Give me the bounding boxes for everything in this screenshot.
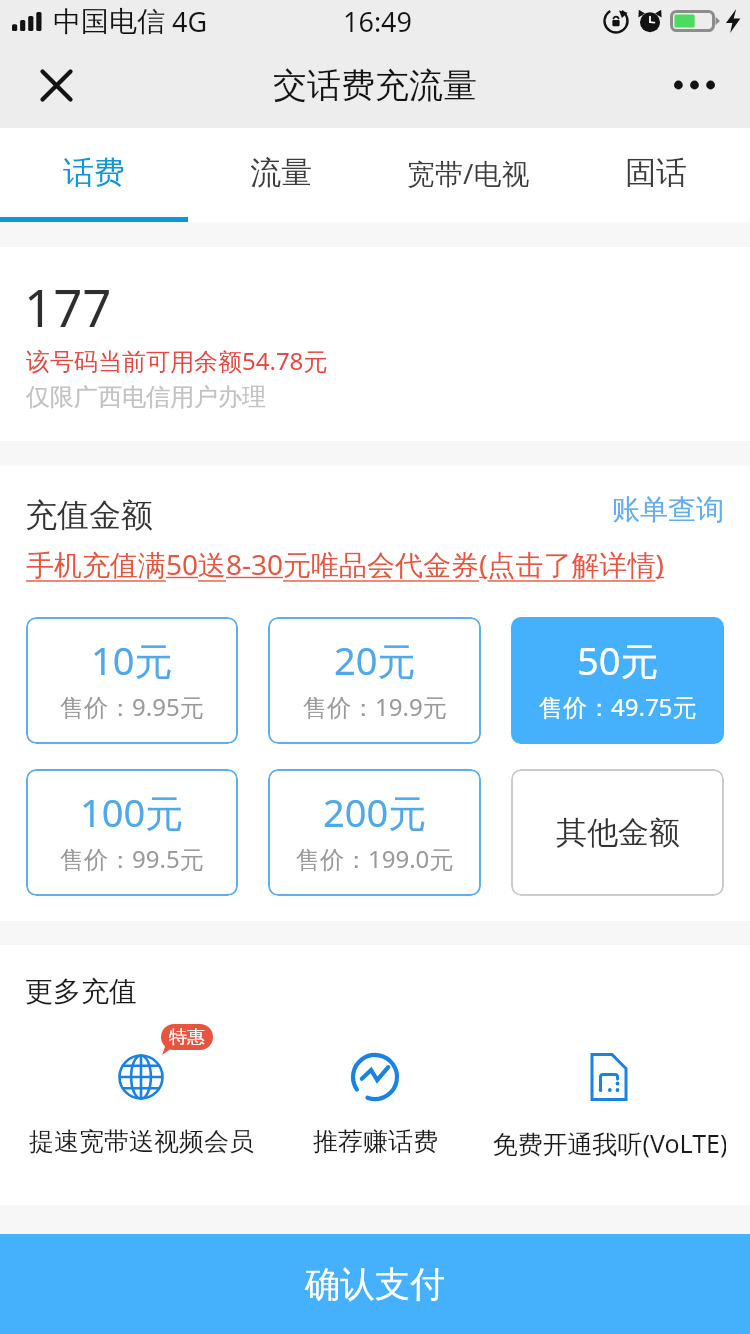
staticText: 100元 bbox=[80, 786, 184, 838]
staticText: 200元 bbox=[323, 786, 427, 838]
button[interactable]: 10元 bbox=[26, 617, 238, 744]
staticText: 10元 bbox=[91, 634, 173, 686]
staticText: 账单查询 bbox=[612, 492, 724, 527]
button[interactable]: More options bbox=[656, 57, 732, 113]
button[interactable]: 流量 bbox=[187, 128, 374, 217]
staticText: 特惠 bbox=[169, 1026, 205, 1049]
button[interactable]: 话费 bbox=[0, 128, 187, 217]
button[interactable]: 100元 bbox=[26, 769, 238, 896]
staticText: 手机充值满50送8-30元唯品会代金券(点击了解详情) bbox=[26, 545, 664, 583]
staticText: 流量 bbox=[250, 153, 312, 192]
staticText: 交话费充流量 bbox=[273, 64, 477, 107]
button[interactable]: 其他金额 bbox=[511, 769, 724, 896]
button[interactable]: 确认支付 bbox=[0, 1234, 750, 1334]
staticText: 固话 bbox=[625, 153, 687, 192]
staticText: 售价：99.5元 bbox=[60, 842, 204, 875]
staticText: 提速宽带送视频会员 bbox=[29, 1126, 254, 1157]
button[interactable]: 宽带/电视 bbox=[374, 128, 562, 217]
staticText: 话费 bbox=[63, 153, 125, 192]
button[interactable]: 推荐赚话费 bbox=[258, 1048, 492, 1157]
button[interactable]: 200元 bbox=[268, 769, 481, 896]
staticText: 16:49 bbox=[343, 3, 413, 40]
staticText: 售价：49.75元 bbox=[539, 690, 697, 723]
staticText: 宽带/电视 bbox=[407, 154, 530, 192]
button[interactable]: 账单查询 bbox=[612, 492, 724, 527]
staticText: 中国电信 bbox=[53, 4, 165, 39]
staticText: 确认支付 bbox=[305, 1262, 445, 1306]
staticText: 售价：199.0元 bbox=[296, 842, 454, 875]
button[interactable]: 免费开通我听(VoLTE) bbox=[492, 1048, 726, 1160]
staticText: 其他金额 bbox=[556, 813, 680, 852]
staticText: 免费开通我听(VoLTE) bbox=[492, 1126, 726, 1160]
staticText: 售价：9.95元 bbox=[60, 690, 204, 723]
button[interactable]: Close bbox=[24, 53, 88, 117]
staticText: 售价：19.9元 bbox=[303, 690, 447, 723]
staticText: 仅限广西电信用户办理 bbox=[26, 382, 266, 412]
staticText: 177 bbox=[24, 272, 112, 341]
button[interactable]: 固话 bbox=[562, 128, 750, 217]
staticText: 更多充值 bbox=[25, 974, 137, 1009]
button[interactable]: 20元 bbox=[268, 617, 481, 744]
staticText: 推荐赚话费 bbox=[313, 1126, 438, 1157]
staticText: 20元 bbox=[334, 634, 416, 686]
button[interactable]: 50元 bbox=[511, 617, 724, 744]
button[interactable]: 特惠 bbox=[24, 1048, 258, 1157]
staticText: 充值金额 bbox=[25, 495, 153, 535]
button[interactable]: 手机充值满50送8-30元唯品会代金券(点击了解详情) bbox=[26, 545, 664, 583]
staticText: 50元 bbox=[577, 634, 659, 686]
staticText: 该号码当前可用余额54.78元 bbox=[26, 344, 328, 377]
staticText: 4G bbox=[172, 3, 208, 40]
